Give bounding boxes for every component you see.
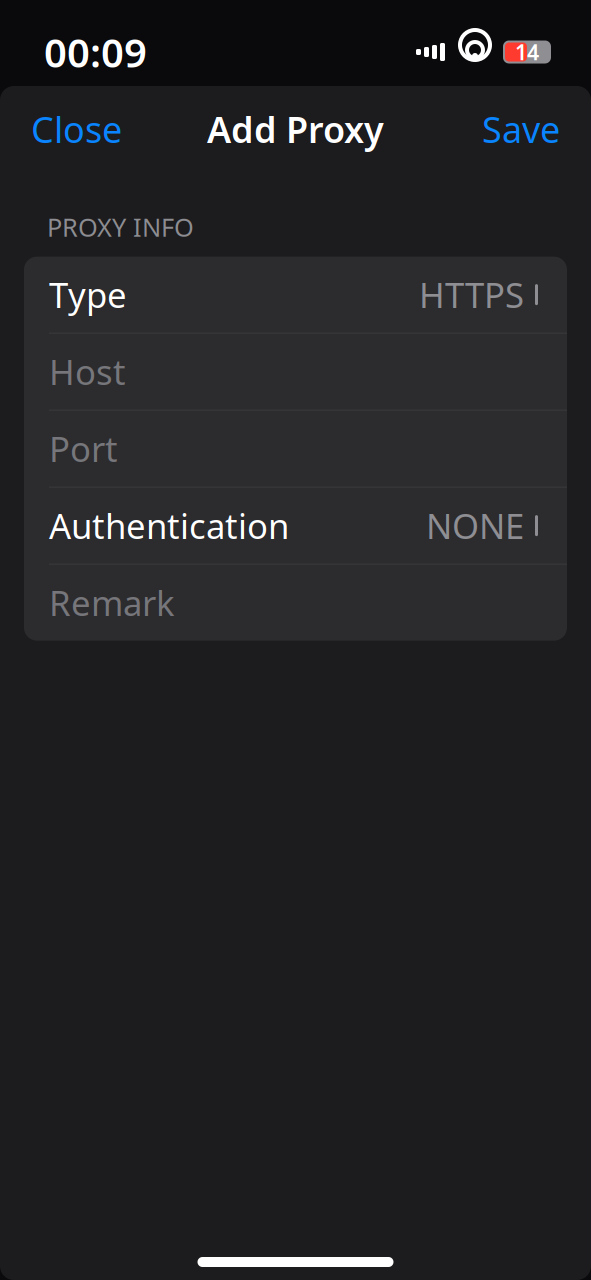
staticText: 14 xyxy=(515,38,539,66)
staticText: Port xyxy=(49,426,118,472)
button[interactable]: Type xyxy=(24,257,567,333)
staticText: Add Proxy xyxy=(207,105,384,153)
button[interactable]: Close xyxy=(9,93,144,165)
button[interactable]: Port xyxy=(24,411,567,487)
button[interactable]: Save xyxy=(460,93,582,165)
staticText: HTTPS xyxy=(419,272,524,318)
staticText: NONE xyxy=(426,503,524,549)
button[interactable]: Authentication xyxy=(24,488,567,564)
staticText: Host xyxy=(49,349,126,395)
staticText: Authentication xyxy=(49,503,289,549)
staticText: PROXY INFO xyxy=(47,210,194,244)
staticText: Save xyxy=(482,105,560,153)
button[interactable]: Host xyxy=(24,334,567,410)
staticText: Type xyxy=(49,272,127,318)
staticText: Remark xyxy=(49,580,175,626)
button[interactable]: Remark xyxy=(24,565,567,641)
staticText: 00:09 xyxy=(44,25,147,78)
staticText: Close xyxy=(31,105,122,153)
